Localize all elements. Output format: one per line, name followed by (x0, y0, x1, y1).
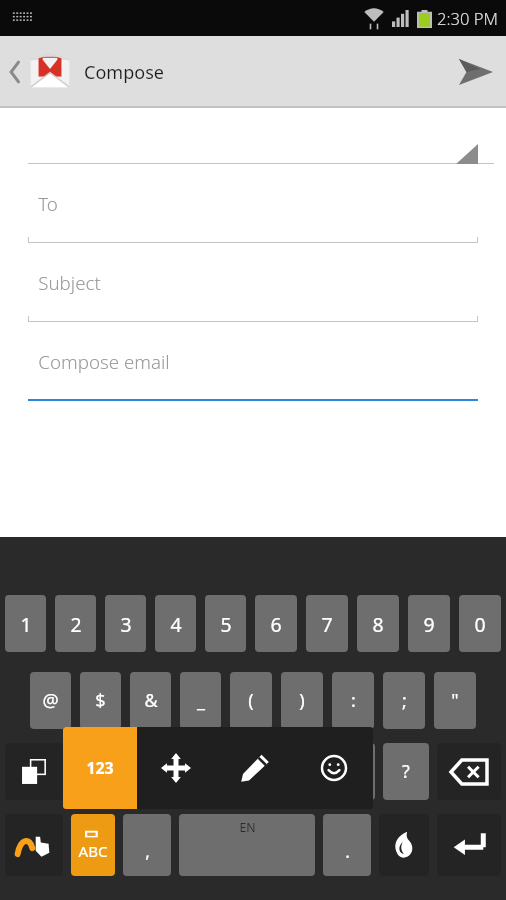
staticText: 123 (86, 757, 114, 779)
staticText: Compose (84, 60, 164, 85)
button[interactable]: Key (71, 743, 115, 800)
staticText: , (145, 840, 150, 864)
button[interactable]: ? (383, 743, 429, 800)
button[interactable]: ABC (71, 814, 115, 876)
button[interactable]: " (434, 672, 476, 729)
staticText: 8 (372, 611, 384, 637)
staticText: 3 (120, 611, 132, 637)
button[interactable]: Key (331, 743, 375, 800)
other: Back (8, 59, 22, 85)
button[interactable]: 3 (105, 595, 146, 652)
staticText: Subject (38, 270, 101, 295)
staticText: 0 (474, 611, 486, 637)
button[interactable]: @ (30, 672, 71, 729)
button[interactable]: Move (137, 727, 215, 809)
button[interactable]: 4 (155, 595, 196, 652)
button[interactable]: , (123, 814, 171, 876)
button[interactable]: Backspace (437, 743, 501, 800)
staticText: 4 (170, 611, 182, 637)
staticText: . (345, 840, 350, 864)
button[interactable]: Swipe input (5, 814, 63, 876)
staticText: 6 (270, 611, 282, 637)
button[interactable]: Compose email (0, 322, 506, 401)
button[interactable]: Key (227, 743, 271, 800)
button[interactable]: Voice input (379, 814, 429, 876)
button[interactable]: ) (281, 672, 323, 729)
button[interactable]: _ (180, 672, 221, 729)
button[interactable]: 1 (5, 595, 46, 652)
staticText: 7 (321, 611, 333, 637)
staticText: 1 (20, 611, 32, 637)
staticText: ( (248, 688, 254, 713)
staticText: & (144, 688, 158, 713)
button[interactable]: . (323, 814, 371, 876)
button[interactable]: Space (179, 814, 315, 876)
button[interactable]: Send (446, 42, 506, 102)
button[interactable]: Key (123, 743, 167, 800)
staticText: $ (95, 688, 106, 713)
button[interactable]: 5 (205, 595, 246, 652)
staticText: _ (197, 688, 205, 713)
staticText: ABC (78, 841, 108, 862)
button[interactable]: ; (383, 672, 425, 729)
staticText: EN (239, 819, 256, 836)
staticText: @ (42, 688, 59, 713)
button[interactable]: : (332, 672, 374, 729)
button[interactable]: ( (230, 672, 272, 729)
staticText: ? (402, 759, 410, 784)
staticText: 2 (70, 611, 82, 637)
button[interactable]: $ (80, 672, 121, 729)
button[interactable]: Key (279, 743, 323, 800)
staticText: To (38, 191, 58, 216)
button[interactable]: Subject (0, 243, 506, 322)
staticText: ) (299, 688, 305, 713)
button[interactable]: To (0, 164, 506, 243)
button[interactable]: Enter (437, 814, 501, 876)
staticText: : (351, 688, 356, 713)
staticText: ; (402, 688, 407, 713)
button[interactable]: Emoji (294, 727, 373, 809)
button[interactable]: 8 (357, 595, 399, 652)
button[interactable]: 2 (55, 595, 96, 652)
button[interactable]: 6 (255, 595, 297, 652)
button[interactable]: Handwriting (215, 727, 294, 809)
button[interactable]: Key (175, 743, 219, 800)
staticText: Compose email (38, 349, 170, 374)
button[interactable]: & (130, 672, 171, 729)
button[interactable]: Symbols page (5, 743, 63, 800)
staticText: 5 (220, 611, 232, 637)
staticText: 2:30 PM (437, 7, 498, 30)
button[interactable]: 0 (459, 595, 501, 652)
button[interactable]: 9 (408, 595, 450, 652)
button[interactable]: Back (4, 53, 168, 91)
staticText: " (451, 688, 459, 713)
staticText: 9 (423, 611, 435, 637)
button[interactable]: 123 (63, 727, 137, 809)
button[interactable]: 7 (306, 595, 348, 652)
